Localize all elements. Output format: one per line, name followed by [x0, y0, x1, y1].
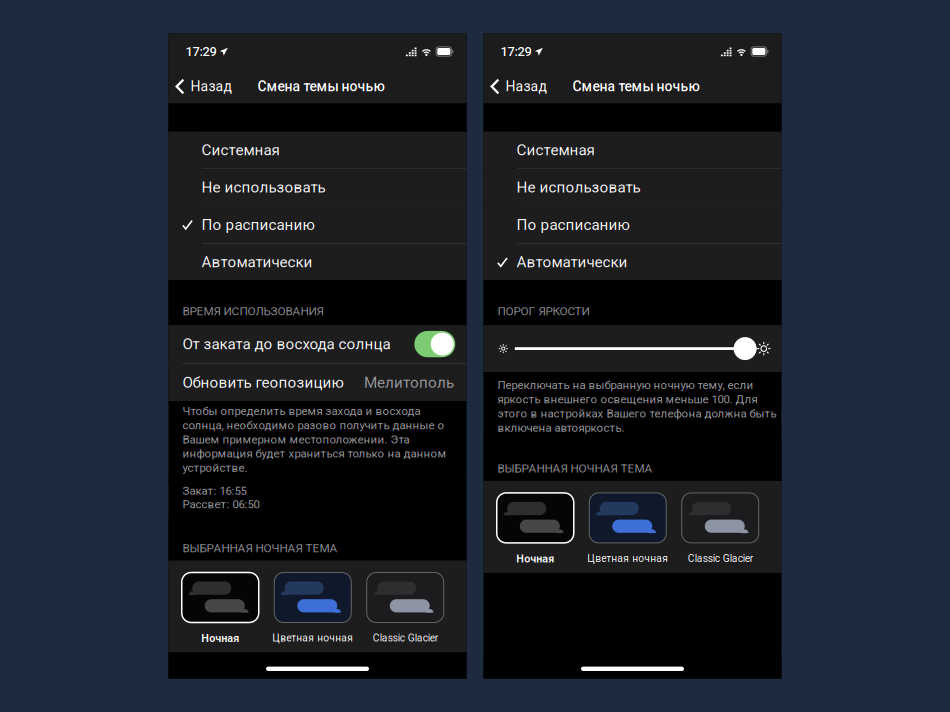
- staticText: Мелитополь: [364, 374, 454, 391]
- staticText: Вашем примерном местоположении. Эта: [182, 433, 409, 446]
- staticText: Рассвет: 06:50: [182, 497, 259, 511]
- button[interactable]: Системная: [168, 132, 466, 168]
- button[interactable]: Системная: [483, 132, 781, 168]
- staticText: Цветная ночная: [272, 632, 353, 644]
- button[interactable]: Classic Glacier: [674, 481, 766, 573]
- button[interactable]: По расписанию: [168, 206, 466, 243]
- staticText: ПОРОГ ЯРКОСТИ: [497, 304, 589, 318]
- staticText: Classic Glacier: [373, 632, 438, 644]
- staticText: устройстве.: [182, 461, 247, 475]
- button[interactable]: Ночная: [174, 560, 266, 652]
- staticText: Не использовать: [201, 178, 325, 196]
- staticText: Ночная: [201, 632, 239, 645]
- button[interactable]: Цветная ночная: [581, 481, 674, 573]
- staticText: Автоматически: [201, 253, 312, 271]
- button[interactable]: Назад: [483, 69, 554, 103]
- staticText: ВЫБРАННАЯ НОЧНАЯ ТЕМА: [497, 462, 652, 475]
- staticText: Смена темы ночью: [572, 78, 699, 95]
- button[interactable]: Порог яркости: [483, 325, 781, 372]
- staticText: 17:29: [185, 44, 216, 59]
- button[interactable]: Обновить геопозицию: [168, 364, 466, 401]
- staticText: этого в настройках Вашего телефона должн…: [497, 407, 776, 420]
- staticText: информация будет храниться только на дан…: [182, 447, 446, 460]
- staticText: солнца, необходимо разово получить данны…: [182, 419, 444, 432]
- button[interactable]: Ночная: [489, 481, 581, 573]
- staticText: Закат: 16:55: [182, 484, 246, 497]
- staticText: По расписанию: [516, 216, 629, 234]
- staticText: включена автояркость.: [497, 421, 624, 434]
- staticText: Назад: [505, 78, 546, 95]
- staticText: Цветная ночная: [587, 552, 668, 564]
- staticText: Смена темы ночью: [257, 78, 384, 95]
- staticText: Ночная: [516, 552, 554, 565]
- button[interactable]: Не использовать: [483, 169, 781, 206]
- button[interactable]: Цветная ночная: [266, 560, 359, 652]
- staticText: яркость внешнего освещения меньше 100. Д…: [497, 393, 757, 406]
- button[interactable]: Автоматически: [483, 244, 781, 280]
- staticText: От заката до восхода солнца: [182, 335, 390, 353]
- button[interactable]: По расписанию: [483, 206, 781, 243]
- staticText: ВРЕМЯ ИСПОЛЬЗОВАНИЯ: [182, 304, 323, 318]
- staticText: Системная: [516, 141, 594, 159]
- button[interactable]: От заката до восхода солнца: [168, 325, 466, 363]
- staticText: ВЫБРАННАЯ НОЧНАЯ ТЕМА: [182, 541, 337, 555]
- button[interactable]: Classic Glacier: [359, 560, 451, 652]
- button[interactable]: Не использовать: [168, 169, 466, 206]
- staticText: Системная: [201, 141, 279, 159]
- staticText: Назад: [190, 78, 231, 95]
- staticText: По расписанию: [201, 216, 314, 234]
- staticText: Автоматически: [516, 253, 627, 271]
- staticText: Чтобы определить время захода и восхода: [182, 404, 420, 418]
- button[interactable]: Автоматически: [168, 244, 466, 280]
- button[interactable]: Назад: [168, 69, 239, 103]
- staticText: Обновить геопозицию: [182, 374, 343, 391]
- staticText: Classic Glacier: [688, 552, 753, 564]
- staticText: Переключать на выбранную ночную тему, ес…: [497, 378, 753, 392]
- staticText: Не использовать: [516, 178, 640, 196]
- staticText: 17:29: [500, 44, 531, 59]
